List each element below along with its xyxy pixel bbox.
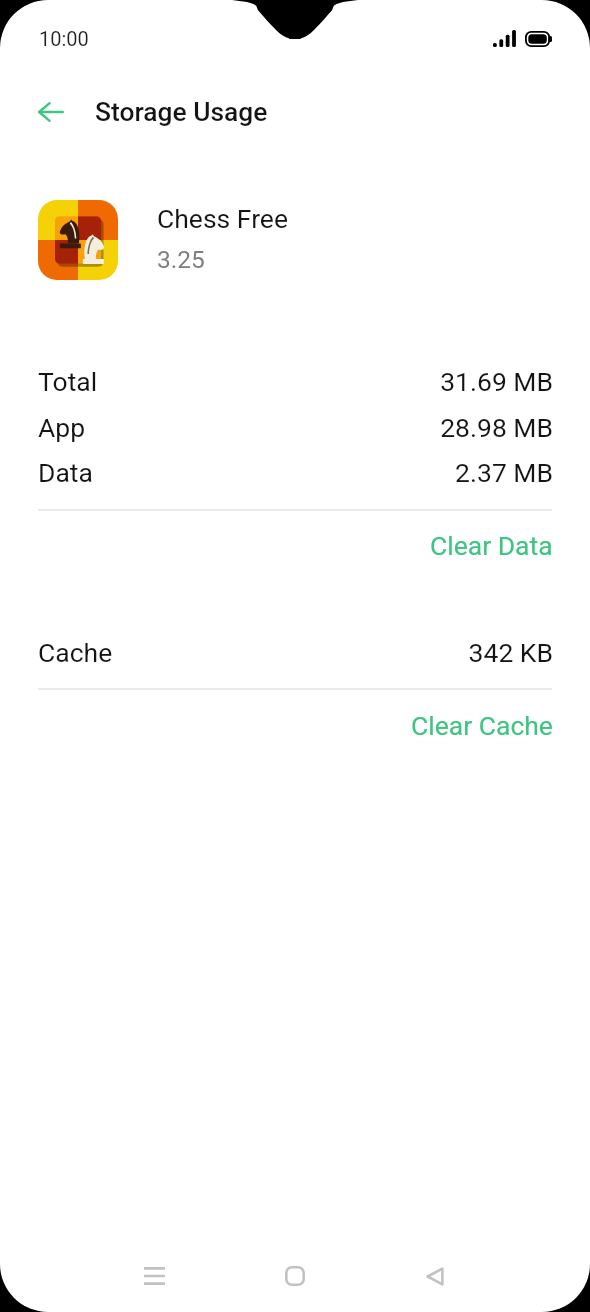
button[interactable]: Back — [27, 88, 75, 135]
button[interactable]: Clear Cache — [0, 698, 590, 752]
staticText: Cache — [38, 637, 113, 668]
staticText: Data — [38, 457, 93, 488]
staticText: 10:00 — [39, 27, 89, 50]
button[interactable]: Chess Free — [0, 188, 590, 288]
button[interactable]: Home — [265, 1246, 325, 1306]
staticText: 31.69 MB — [38, 366, 553, 397]
staticText: Clear Data — [430, 530, 553, 561]
staticText: Chess Free — [157, 203, 288, 234]
staticText: 2.37 MB — [38, 457, 553, 488]
button[interactable]: Clear Data — [0, 518, 590, 572]
button[interactable]: Back — [405, 1246, 465, 1306]
button[interactable]: Recent apps — [124, 1246, 184, 1306]
staticText: 3.25 — [157, 245, 205, 274]
staticText: Clear Cache — [411, 710, 553, 741]
staticText: Total — [38, 366, 98, 397]
staticText: 342 KB — [38, 637, 553, 668]
staticText: 28.98 MB — [38, 412, 553, 443]
staticText: Storage Usage — [95, 97, 268, 128]
staticText: App — [38, 412, 86, 443]
